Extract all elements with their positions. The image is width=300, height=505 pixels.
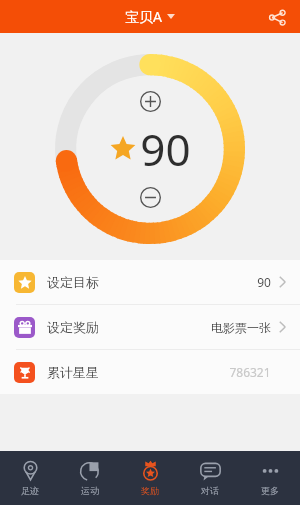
button[interactable]: 设定目标 xyxy=(0,260,300,304)
staticText: 运动 xyxy=(81,485,99,496)
button[interactable]: 更多 xyxy=(240,451,300,505)
button[interactable]: 对话 xyxy=(180,451,240,505)
button[interactable]: 足迹 xyxy=(0,451,60,505)
staticText: 奖励 xyxy=(141,485,159,496)
button[interactable]: 设定奖励 xyxy=(0,305,300,349)
staticText: 90 xyxy=(140,119,191,179)
staticText: 90 xyxy=(257,274,271,290)
button[interactable]: Decrease xyxy=(133,180,167,214)
staticText: 宝贝A xyxy=(125,7,162,26)
button[interactable]: 运动 xyxy=(60,451,120,505)
staticText: 累计星星 xyxy=(47,364,99,380)
staticText: 足迹 xyxy=(21,485,39,496)
staticText: 电影票一张 xyxy=(211,320,271,335)
button[interactable]: 奖励 xyxy=(120,451,180,505)
button[interactable]: Share xyxy=(262,2,292,32)
staticText: 786321 xyxy=(229,364,271,380)
staticText: 设定奖励 xyxy=(47,319,99,335)
staticText: 更多 xyxy=(261,485,279,496)
button[interactable]: 宝贝A xyxy=(119,5,181,28)
staticText: 对话 xyxy=(201,485,219,496)
button[interactable]: 累计星星 xyxy=(0,350,300,394)
button[interactable]: Increase xyxy=(133,84,167,118)
staticText: 设定目标 xyxy=(47,274,99,290)
